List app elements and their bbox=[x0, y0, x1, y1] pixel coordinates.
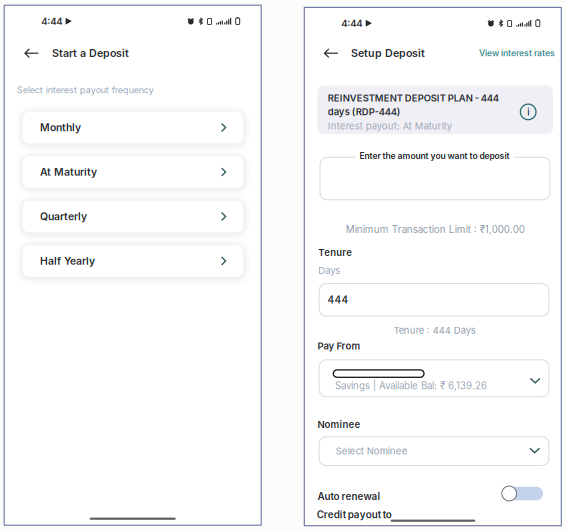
button[interactable]: Half Yearly bbox=[22, 244, 244, 277]
staticText: 4:44 bbox=[41, 15, 62, 27]
staticText: At Maturity bbox=[40, 166, 97, 178]
staticText: Pay From bbox=[317, 340, 360, 352]
staticText: Monthly bbox=[40, 121, 81, 134]
button[interactable]: Pay from account bbox=[319, 360, 549, 397]
staticText: Minimum Transaction Limit : ₹1,000.00 bbox=[346, 223, 525, 235]
staticText: Start a Deposit bbox=[52, 47, 129, 60]
button[interactable]: Plan information bbox=[520, 104, 536, 120]
staticText: 4:44 bbox=[341, 17, 362, 29]
button[interactable]: Quarterly bbox=[22, 200, 244, 233]
button[interactable]: Monthly bbox=[22, 111, 244, 144]
staticText: days (RDP-444) bbox=[328, 106, 401, 117]
button[interactable]: Select nominee bbox=[319, 437, 549, 465]
staticText: 444 bbox=[328, 294, 349, 306]
staticText: Tenure bbox=[318, 247, 352, 258]
staticText: Quarterly bbox=[40, 210, 87, 223]
staticText: Tenure : 444 Days bbox=[394, 325, 476, 336]
staticText: Enter the amount you want to deposit bbox=[360, 151, 510, 161]
staticText: Auto renewal bbox=[317, 490, 380, 502]
button[interactable]: At Maturity bbox=[22, 155, 244, 188]
staticText: View interest rates bbox=[479, 48, 555, 58]
button[interactable]: View interest rates bbox=[460, 45, 555, 61]
button[interactable]: Back bbox=[20, 42, 42, 64]
button[interactable]: Auto renewal bbox=[502, 486, 543, 501]
staticText: Select Nominee bbox=[336, 445, 408, 457]
staticText: Interest payout: At Maturity bbox=[328, 120, 452, 132]
staticText: Credit payout to bbox=[317, 509, 392, 521]
staticText: i bbox=[527, 106, 529, 118]
staticText: Half Yearly bbox=[40, 255, 95, 267]
staticText: Savings | Available Bal: ₹ 6,139.26 bbox=[335, 380, 487, 392]
staticText: Nominee bbox=[317, 419, 360, 430]
staticText: Select interest payout frequency bbox=[17, 84, 154, 95]
staticText: REINVESTMENT DEPOSIT PLAN - 444 bbox=[328, 92, 499, 104]
staticText: Days bbox=[318, 265, 340, 276]
button[interactable]: Back bbox=[320, 42, 342, 64]
staticText: Setup Deposit bbox=[351, 47, 425, 60]
